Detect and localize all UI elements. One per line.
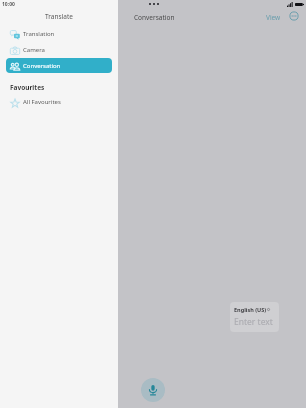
staticText: Translate — [0, 12, 118, 21]
button[interactable]: All Favourites — [6, 94, 112, 109]
staticText: Favourites — [10, 83, 45, 92]
staticText: Camera — [23, 46, 45, 54]
staticText: Conversation — [134, 13, 175, 22]
staticText: Enter text — [234, 316, 273, 328]
button[interactable]: English (US) — [230, 302, 279, 332]
button[interactable]: Conversation — [6, 58, 112, 73]
staticText: Conversation — [23, 62, 61, 70]
button[interactable]: More options — [288, 10, 300, 22]
staticText: English (US) — [234, 306, 267, 313]
staticText: View — [266, 13, 281, 22]
staticText: 10:00 — [2, 1, 15, 8]
button[interactable]: View — [263, 10, 284, 25]
button[interactable]: Camera — [6, 42, 112, 57]
staticText: All Favourites — [23, 98, 61, 106]
staticText: Translation — [23, 30, 55, 38]
button[interactable]: Microphone — [141, 378, 165, 402]
button[interactable]: Translation — [6, 26, 112, 41]
